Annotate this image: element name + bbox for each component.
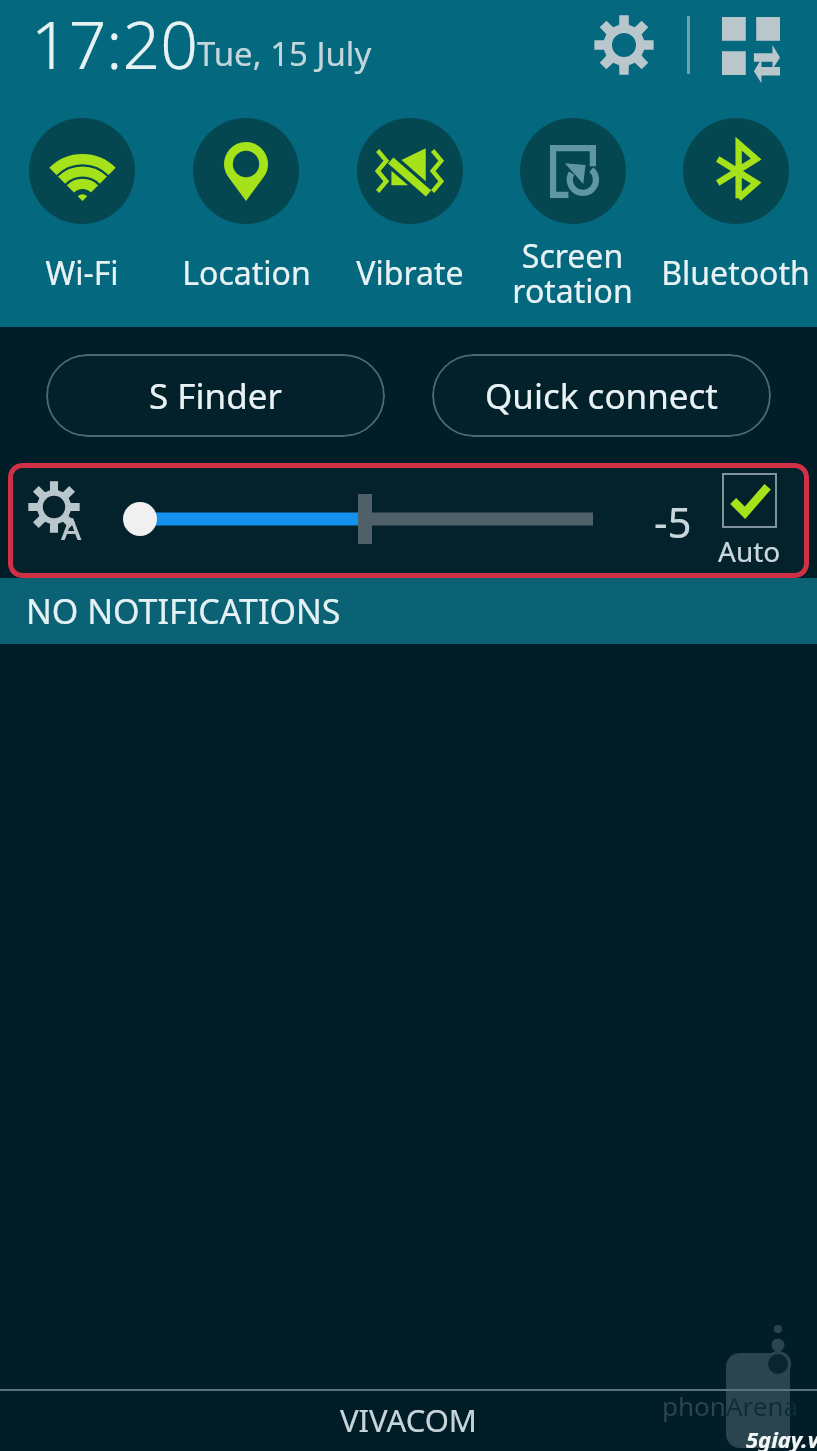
staticText: 5giay.vn (746, 1424, 817, 1451)
staticText: phone (662, 1388, 741, 1423)
staticText: -5 (654, 493, 692, 550)
button[interactable]: Wi-Fi (0, 118, 164, 316)
staticText: Location (182, 251, 311, 295)
staticText: Wi-Fi (45, 251, 119, 295)
button[interactable]: Screen rotation (491, 118, 654, 316)
staticText: S Finder (149, 372, 282, 420)
button[interactable]: Edit quick settings (712, 7, 790, 85)
staticText: Tue, 15 July (197, 31, 372, 76)
staticText: Quick connect (485, 372, 718, 420)
staticText: Screen rotation (512, 234, 633, 312)
button[interactable]: Auto (718, 473, 781, 570)
staticText: 17:20 (31, 0, 198, 88)
button[interactable]: Bluetooth (654, 118, 817, 316)
staticText: Vibrate (356, 251, 464, 295)
staticText: VIVACOM (340, 1399, 477, 1441)
staticText: Bluetooth (661, 251, 810, 295)
button[interactable]: Auto brightness (28, 481, 94, 547)
button[interactable]: Location (164, 118, 328, 316)
button[interactable]: S Finder (46, 354, 385, 437)
button[interactable]: Quick connect (432, 354, 771, 437)
staticText: Auto (718, 532, 781, 570)
staticText: NO NOTIFICATIONS (26, 588, 341, 634)
button[interactable]: Settings (585, 6, 663, 84)
staticText: Arena (726, 1388, 799, 1423)
staticText: A (61, 507, 82, 549)
button[interactable]: Vibrate (328, 118, 491, 316)
